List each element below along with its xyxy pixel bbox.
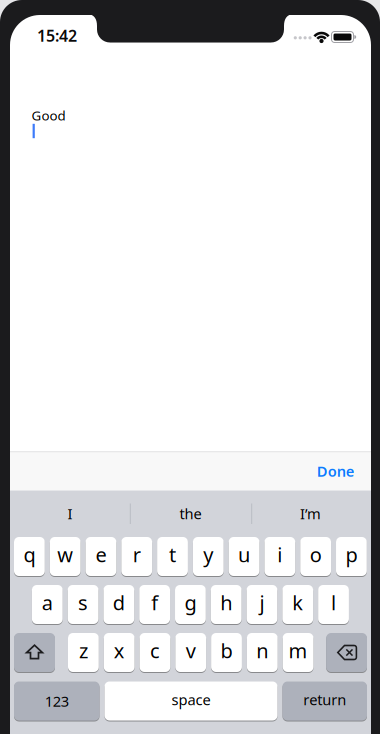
staticText: d [113,589,125,616]
staticText: j [259,589,264,616]
button[interactable]: o [300,537,331,576]
button[interactable]: a [32,585,63,624]
staticText: u [238,541,250,568]
button[interactable]: k [282,585,313,624]
button[interactable]: m [283,633,313,672]
staticText: s [78,589,88,616]
button[interactable]: f [139,585,170,624]
staticText: i [277,541,282,568]
staticText: e [95,541,106,568]
button[interactable]: s [68,585,98,624]
staticText: x [114,637,125,664]
staticText: I [67,504,72,523]
staticText: k [292,589,303,616]
button[interactable]: h [211,585,242,624]
button[interactable]: i [264,537,295,576]
button[interactable]: p [336,537,367,576]
button[interactable]: Done [317,461,355,481]
button[interactable]: e [86,537,116,576]
button[interactable]: v [175,633,206,672]
staticText: g [184,589,196,616]
button[interactable]: g [175,585,206,624]
staticText: q [23,541,35,568]
button[interactable]: return [282,681,367,720]
staticText: n [256,637,268,664]
button[interactable]: x [104,633,135,672]
button[interactable]: q [14,537,45,576]
staticText: space [171,690,210,709]
staticText: o [310,541,322,568]
staticText: m [289,637,308,664]
button[interactable]: b [211,633,242,672]
staticText: the [179,504,201,523]
staticText: return [303,690,346,709]
button[interactable]: the [131,491,249,536]
staticText: b [220,637,232,664]
button[interactable]: d [103,585,134,624]
staticText: Good [31,106,65,124]
button[interactable]: 123 [14,681,99,720]
staticText: l [331,589,336,616]
button[interactable]: n [247,633,278,672]
button[interactable]: I [11,491,129,536]
button[interactable]: l [318,585,349,624]
button[interactable]: u [229,537,259,576]
staticText: 15:42 [37,25,77,46]
staticText: v [186,637,196,664]
button[interactable] [14,633,55,672]
button[interactable]: t [157,537,188,576]
staticText: t [169,541,176,568]
button[interactable]: I’m [251,491,369,536]
staticText: I’m [300,504,321,523]
staticText: c [150,637,160,664]
staticText: a [42,589,53,616]
button[interactable]: y [193,537,224,576]
staticText: 123 [45,691,69,711]
staticText: f [151,589,158,616]
button[interactable] [326,633,367,672]
staticText: w [57,541,73,568]
button[interactable]: c [140,633,170,672]
button[interactable]: z [68,633,99,672]
staticText: Done [317,461,355,481]
staticText: y [203,541,213,568]
button[interactable]: w [50,537,81,576]
staticText: p [345,541,357,568]
button[interactable]: space [104,681,277,720]
button[interactable]: r [121,537,152,576]
staticText: z [79,637,88,664]
button[interactable]: j [247,585,277,624]
staticText: r [133,541,141,568]
staticText: h [220,589,232,616]
